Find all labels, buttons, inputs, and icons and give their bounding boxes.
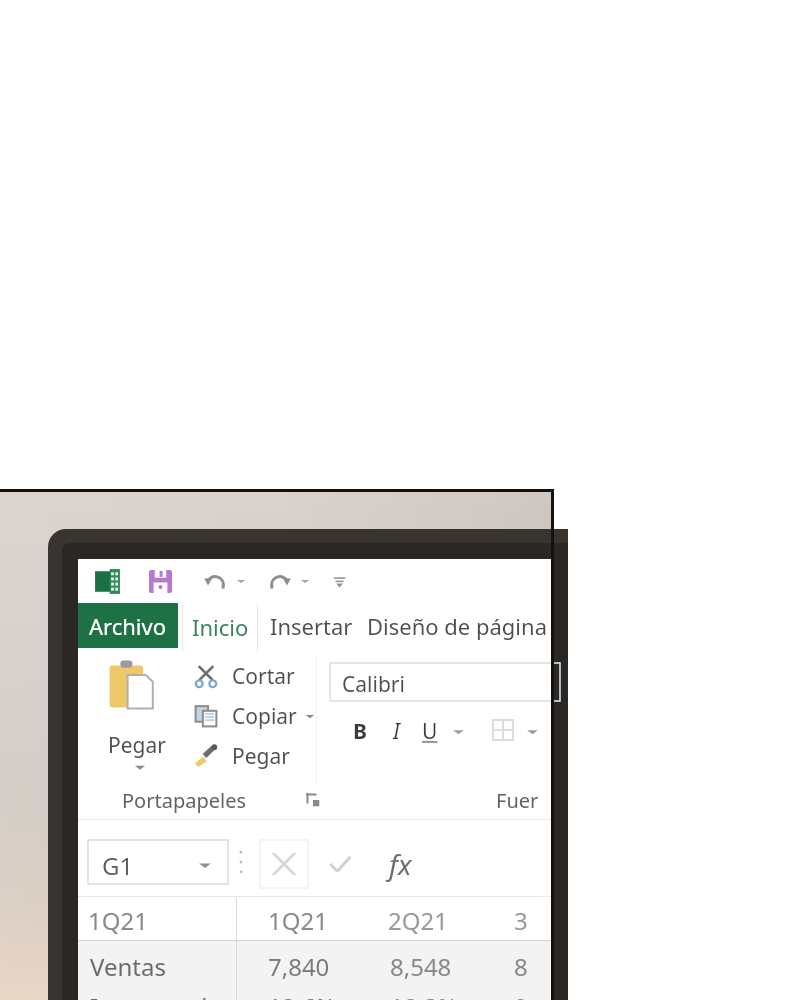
staticText: Pegar xyxy=(232,742,290,771)
button[interactable]: Deshacer xyxy=(200,566,230,596)
staticText: Fuer xyxy=(496,787,539,814)
button[interactable]: U xyxy=(414,715,446,747)
staticText: 1Q21 xyxy=(268,904,328,937)
staticText: 8 xyxy=(514,950,528,983)
staticText: U xyxy=(422,717,438,746)
staticText: 8,548 xyxy=(390,950,452,983)
staticText: B xyxy=(353,717,367,746)
button[interactable]: Guardar xyxy=(144,565,176,597)
staticText: I xyxy=(393,717,400,746)
button[interactable]: I xyxy=(380,715,412,747)
button[interactable]: Introducir xyxy=(316,840,364,888)
staticText: Ventas xyxy=(90,950,166,983)
staticText: Cortar xyxy=(232,662,295,691)
staticText: 12.6% xyxy=(268,990,336,1000)
button[interactable]: Insertar xyxy=(266,603,357,648)
staticText: Diseño de página xyxy=(367,611,547,641)
staticText: 2Q21 xyxy=(388,904,448,937)
staticText: Calibri xyxy=(342,670,405,699)
staticText: Pegar xyxy=(108,731,166,760)
button[interactable]: Más bordes xyxy=(526,725,539,738)
button[interactable]: Calibri xyxy=(330,663,560,701)
button[interactable]: Bordes xyxy=(486,713,520,747)
staticText: Insertar xyxy=(270,611,353,641)
button[interactable]: Excel xyxy=(90,564,124,598)
staticText: Inicio xyxy=(192,612,249,642)
button[interactable]: Más subrayados xyxy=(452,725,465,738)
button[interactable]: Cortar xyxy=(190,657,322,695)
button[interactable]: G1 xyxy=(88,840,228,884)
button[interactable]: Pegar xyxy=(90,655,190,787)
button[interactable]: B xyxy=(344,715,376,747)
button[interactable]: Opciones de Portapapeles xyxy=(306,793,320,807)
staticText: Portapapeles xyxy=(122,787,247,814)
staticText: 18.3% xyxy=(390,990,458,1000)
button[interactable]: Pegar xyxy=(190,737,322,775)
button[interactable]: Archivo xyxy=(78,603,178,648)
button[interactable]: Cancelar xyxy=(260,840,308,888)
staticText: 7,840 xyxy=(268,950,330,983)
button[interactable]: Insertar función xyxy=(374,838,426,890)
staticText: fx xyxy=(389,845,412,883)
button[interactable]: Más comandos xyxy=(328,570,350,592)
staticText: G1 xyxy=(102,849,134,882)
staticText: Archivo xyxy=(89,611,167,641)
staticText: Copiar xyxy=(232,702,297,731)
button[interactable]: Rehacer xyxy=(264,566,294,596)
staticText: 3 xyxy=(514,904,528,937)
button[interactable]: Copiar xyxy=(190,697,322,735)
button[interactable]: Diseño de página xyxy=(363,603,551,648)
staticText: 1Q21 xyxy=(88,904,148,937)
staticText: Interanual xyxy=(90,990,208,1000)
button[interactable]: Inicio xyxy=(182,603,258,651)
staticText: 9 xyxy=(514,990,528,1000)
